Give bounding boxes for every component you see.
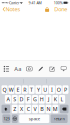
button[interactable]: S — [12, 95, 18, 104]
button[interactable]: return — [51, 114, 68, 123]
staticText: C — [27, 105, 30, 113]
button[interactable]: Lock Note — [43, 5, 51, 13]
staticText: 100% — [54, 0, 63, 5]
button[interactable]: I — [49, 85, 55, 94]
staticText: S — [13, 96, 16, 103]
button[interactable]: H — [39, 95, 45, 104]
staticText: space — [29, 116, 40, 122]
button[interactable]: Hide Keyboard — [60, 64, 68, 73]
button[interactable]: Checklist — [2, 64, 10, 73]
button[interactable]: X — [18, 105, 24, 113]
staticText: I — [51, 86, 53, 93]
staticText: R — [23, 86, 26, 93]
staticText: T — [30, 86, 33, 93]
button[interactable]: M — [52, 105, 58, 113]
button[interactable]: Next Keyboard — [12, 114, 18, 123]
staticText: Q — [2, 86, 6, 93]
button[interactable]: Camera — [25, 64, 33, 73]
staticText: L — [61, 96, 64, 103]
staticText: J — [48, 96, 49, 103]
staticText: U — [43, 86, 47, 93]
button[interactable]: W — [8, 85, 14, 94]
button[interactable]: B — [39, 105, 45, 113]
button[interactable]: A — [5, 95, 11, 104]
staticText: B — [40, 105, 43, 113]
staticText: 9:41 AM — [28, 0, 41, 5]
button[interactable]: Z — [12, 105, 18, 113]
button[interactable]: New Note — [48, 64, 56, 73]
button[interactable]: Shift — [1, 105, 10, 113]
button[interactable]: K — [52, 95, 58, 104]
staticText: return — [54, 116, 65, 121]
staticText: F — [27, 96, 30, 103]
staticText: Carrier — [9, 0, 19, 5]
staticText: K — [54, 96, 57, 103]
button[interactable]: G — [32, 95, 38, 104]
button[interactable]: F — [25, 95, 31, 104]
staticText: V — [33, 105, 36, 113]
button[interactable]: E — [15, 85, 21, 94]
button[interactable]: T — [29, 85, 35, 94]
staticText: O — [57, 86, 61, 93]
button[interactable]: Format — [14, 64, 22, 73]
staticText: Z — [13, 105, 16, 113]
button[interactable]: V — [32, 105, 38, 113]
button[interactable]: D — [18, 95, 24, 104]
staticText: G — [33, 96, 37, 103]
staticText: X — [20, 105, 23, 113]
button[interactable]: N — [45, 105, 52, 113]
button[interactable]: L — [59, 95, 65, 104]
staticText: D — [19, 96, 23, 103]
button[interactable]: Done — [53, 5, 69, 13]
button[interactable]: Delete — [60, 105, 68, 113]
button[interactable]: P — [62, 85, 68, 94]
staticText: M — [53, 105, 58, 113]
staticText: A — [6, 96, 9, 103]
button[interactable]: 123 — [2, 114, 10, 123]
button[interactable]: O — [56, 85, 62, 94]
staticText: P — [64, 86, 67, 93]
staticText: Y — [37, 86, 40, 93]
staticText: Aa — [14, 65, 21, 73]
staticText: N — [46, 105, 50, 113]
button[interactable]: J — [45, 95, 52, 104]
staticText: E — [17, 86, 20, 93]
button[interactable]: R — [22, 85, 28, 94]
button[interactable]: U — [42, 85, 48, 94]
button[interactable]: C — [25, 105, 31, 113]
staticText: H — [40, 96, 44, 103]
button[interactable]: space — [19, 114, 49, 123]
button[interactable]: Notes — [1, 5, 22, 13]
staticText: Notes — [5, 5, 20, 13]
staticText: Done — [54, 5, 67, 13]
staticText: 123 — [3, 116, 9, 121]
button[interactable]: Y — [35, 85, 41, 94]
button[interactable]: Q — [1, 85, 8, 94]
staticText: W — [9, 86, 14, 93]
button[interactable]: Markup — [37, 64, 45, 73]
